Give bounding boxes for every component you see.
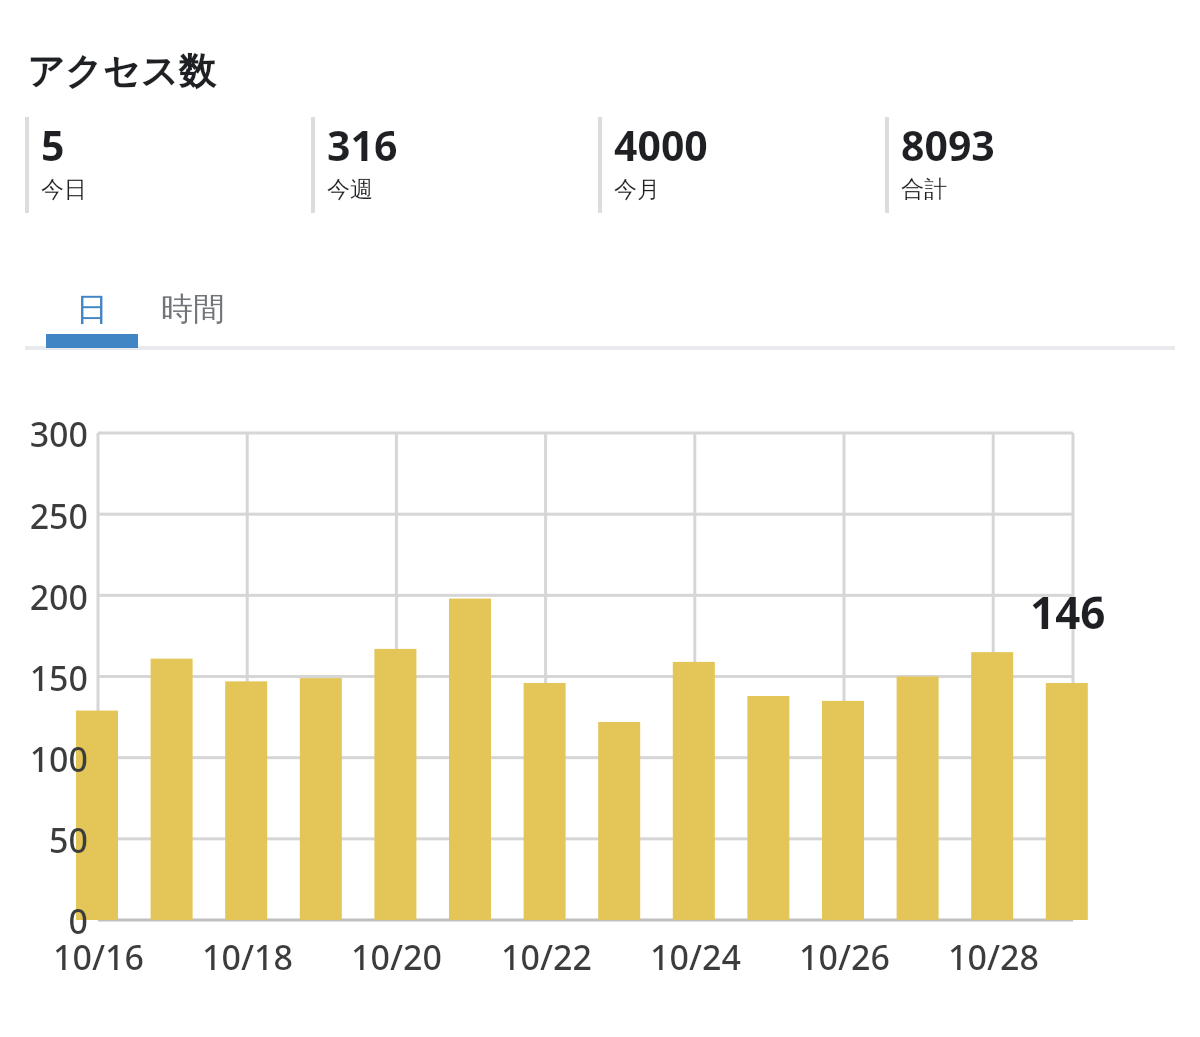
staticText: 10/18	[202, 934, 293, 980]
staticText: 今月	[614, 175, 660, 204]
staticText: 今週	[327, 175, 373, 204]
staticText: 10/28	[948, 934, 1039, 980]
staticText: 0	[68, 898, 88, 944]
staticText: 10/26	[799, 934, 890, 980]
staticText: 10/24	[650, 934, 741, 980]
staticText: 4000	[614, 117, 708, 173]
staticText: 日	[76, 289, 108, 329]
button[interactable]: 5	[25, 117, 311, 213]
staticText: 200	[29, 574, 88, 620]
button[interactable]: 日	[46, 271, 138, 346]
staticText: 合計	[901, 175, 947, 204]
staticText: 250	[29, 493, 88, 539]
staticText: アクセス数	[27, 48, 216, 95]
staticText: 300	[29, 411, 88, 457]
staticText: 50	[49, 817, 88, 863]
staticText: 100	[29, 736, 88, 782]
button[interactable]: 時間	[138, 271, 248, 346]
staticText: 8093	[901, 117, 995, 173]
staticText: 10/22	[501, 934, 592, 980]
staticText: 5	[41, 117, 65, 173]
staticText: 10/16	[53, 934, 144, 980]
button[interactable]: 4000	[598, 117, 885, 213]
staticText: 150	[29, 655, 88, 701]
staticText: 時間	[161, 289, 225, 329]
staticText: 10/20	[351, 934, 442, 980]
staticText: 316	[327, 117, 398, 173]
staticText: 146	[1030, 582, 1106, 642]
button[interactable]: 316	[311, 117, 598, 213]
button[interactable]: 8093	[885, 117, 1172, 213]
staticText: 今日	[41, 175, 87, 204]
